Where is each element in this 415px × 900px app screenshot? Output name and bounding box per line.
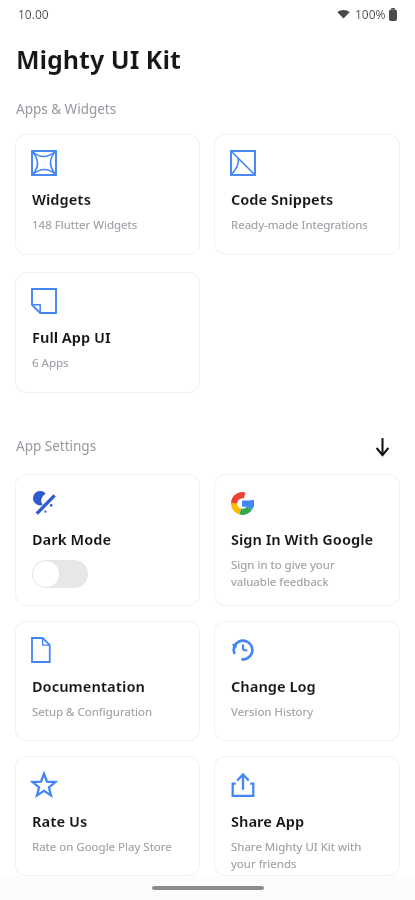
- button[interactable]: Sign In With Google: [214, 474, 400, 606]
- staticText: 100%: [355, 6, 386, 22]
- staticText: Sign in to give your valuable feedback: [231, 557, 335, 589]
- staticText: Widgets: [32, 189, 91, 209]
- button[interactable]: Rate Us: [15, 756, 200, 876]
- staticText: 10.00: [18, 6, 49, 22]
- button[interactable]: Dark Mode: [15, 474, 200, 606]
- staticText: Dark Mode: [32, 529, 112, 549]
- staticText: Mighty UI Kit: [16, 42, 181, 76]
- button[interactable]: Full App UI: [15, 272, 200, 393]
- button[interactable]: Collapse App Settings: [367, 431, 397, 461]
- staticText: Documentation: [32, 676, 145, 696]
- staticText: App Settings: [16, 437, 97, 455]
- staticText: Change Log: [231, 676, 316, 696]
- staticText: Full App UI: [32, 327, 111, 347]
- button[interactable]: Documentation: [15, 621, 200, 741]
- staticText: Rate Us: [32, 811, 88, 831]
- staticText: Setup & Configuration: [32, 704, 153, 720]
- staticText: 148 Flutter Widgets: [32, 217, 138, 233]
- staticText: Share Mighty UI Kit with your friends: [231, 839, 362, 871]
- button[interactable]: Widgets: [15, 134, 200, 255]
- staticText: Rate on Google Play Store: [32, 839, 172, 855]
- button[interactable]: Dark mode toggle, off: [32, 560, 88, 588]
- staticText: Ready-made Integrations: [231, 217, 368, 233]
- staticText: Sign In With Google: [231, 529, 374, 549]
- staticText: 6 Apps: [32, 355, 69, 371]
- staticText: Share App: [231, 811, 305, 831]
- staticText: Code Snippets: [231, 189, 334, 209]
- button[interactable]: Share App: [214, 756, 400, 876]
- staticText: Apps & Widgets: [16, 100, 117, 118]
- button[interactable]: Code Snippets: [214, 134, 400, 255]
- staticText: Version History: [231, 704, 314, 720]
- button[interactable]: Change Log: [214, 621, 400, 741]
